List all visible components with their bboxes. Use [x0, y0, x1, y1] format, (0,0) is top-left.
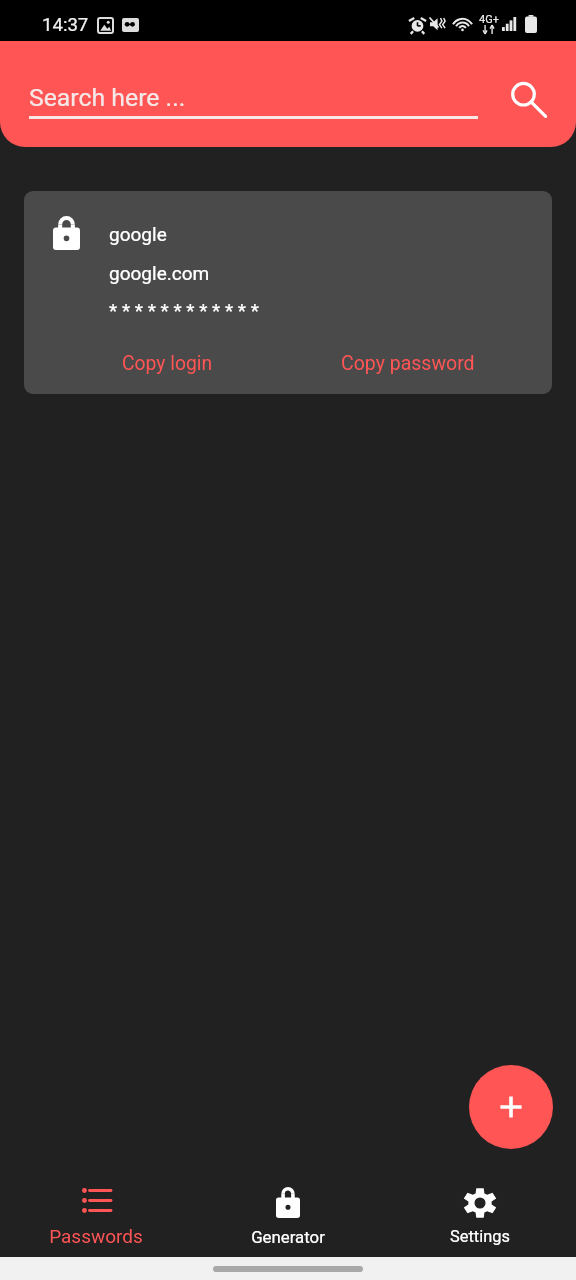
staticText: google	[109, 223, 167, 245]
button[interactable]: Generator	[192, 1160, 384, 1191]
staticText: 14:37	[42, 14, 89, 36]
staticText: 4G+	[479, 13, 499, 26]
button[interactable]: Add password	[469, 1065, 553, 1149]
staticText: google.com	[109, 262, 210, 284]
button[interactable]: Copy password	[320, 344, 496, 382]
staticText: Copy login	[122, 352, 213, 375]
staticText: Search here ...	[29, 83, 186, 112]
button[interactable]: google	[24, 191, 552, 394]
button[interactable]: Settings	[384, 1160, 576, 1190]
staticText: Settings	[450, 1227, 510, 1246]
staticText: ************	[109, 299, 264, 321]
button[interactable]: Copy login	[85, 344, 249, 382]
staticText: Passwords	[49, 1225, 143, 1247]
button[interactable]: Search	[500, 69, 548, 117]
button[interactable]: Search here ...	[29, 83, 478, 127]
staticText: Copy password	[341, 352, 475, 375]
staticText: Generator	[251, 1227, 325, 1247]
